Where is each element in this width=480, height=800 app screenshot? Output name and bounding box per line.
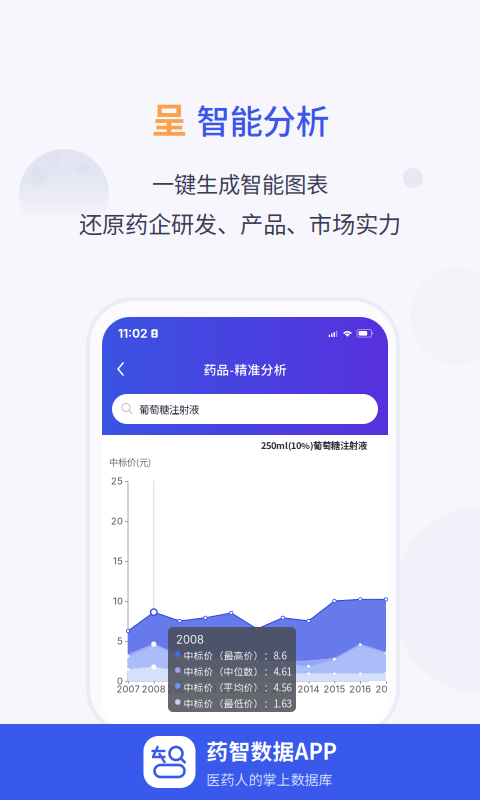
staticText: 智能分析 (196, 95, 328, 143)
staticText: 25 (111, 475, 123, 487)
staticText: 250ml(10%)葡萄糖注射液 (261, 438, 367, 452)
button[interactable]: 葡萄糖注射液 (112, 394, 378, 424)
staticText: 一键生成智能图表 (152, 167, 328, 199)
staticText: 中标价（最高价）：8.6 (183, 648, 286, 662)
staticText: 2017 (375, 683, 396, 695)
staticText: 10 (113, 595, 123, 607)
staticText: 中标价（平均价）：4.56 (183, 680, 291, 694)
staticText: 5 (117, 635, 123, 647)
staticText: 葡萄糖注射液 (139, 401, 199, 417)
staticText: 2008 (142, 683, 166, 695)
staticText: 2009 (168, 683, 192, 695)
staticText: 11:02 (118, 326, 148, 341)
staticText: 医药人的掌上数据库 (206, 769, 332, 789)
staticText: 2011 (221, 683, 241, 695)
staticText: 还原药企研发、产品、市场实力 (79, 206, 401, 240)
staticText: 2015 (323, 683, 345, 695)
staticText: 2007 (116, 683, 139, 695)
staticText: 中标价（中位数）：4.61 (183, 664, 291, 678)
staticText: 0 (117, 675, 123, 687)
staticText: 2012 (246, 683, 268, 695)
staticText: 2014 (298, 683, 320, 695)
staticText: 15 (113, 555, 123, 567)
staticText: 2013 (272, 683, 294, 695)
staticText: 药品-精准分析 (203, 360, 286, 378)
staticText: 2008 (176, 633, 204, 647)
staticText: 中标价(元) (109, 455, 151, 468)
staticText: 20 (111, 515, 123, 527)
button[interactable]: Back (113, 357, 139, 381)
staticText: 2016 (349, 683, 371, 695)
staticText: 药智数据APP (206, 735, 336, 766)
button[interactable]: 药智数据APP (0, 724, 480, 800)
staticText: 呈 (151, 92, 187, 144)
staticText: 中标价（最低价）：1.63 (183, 696, 291, 710)
staticText: 2010 (194, 683, 216, 695)
